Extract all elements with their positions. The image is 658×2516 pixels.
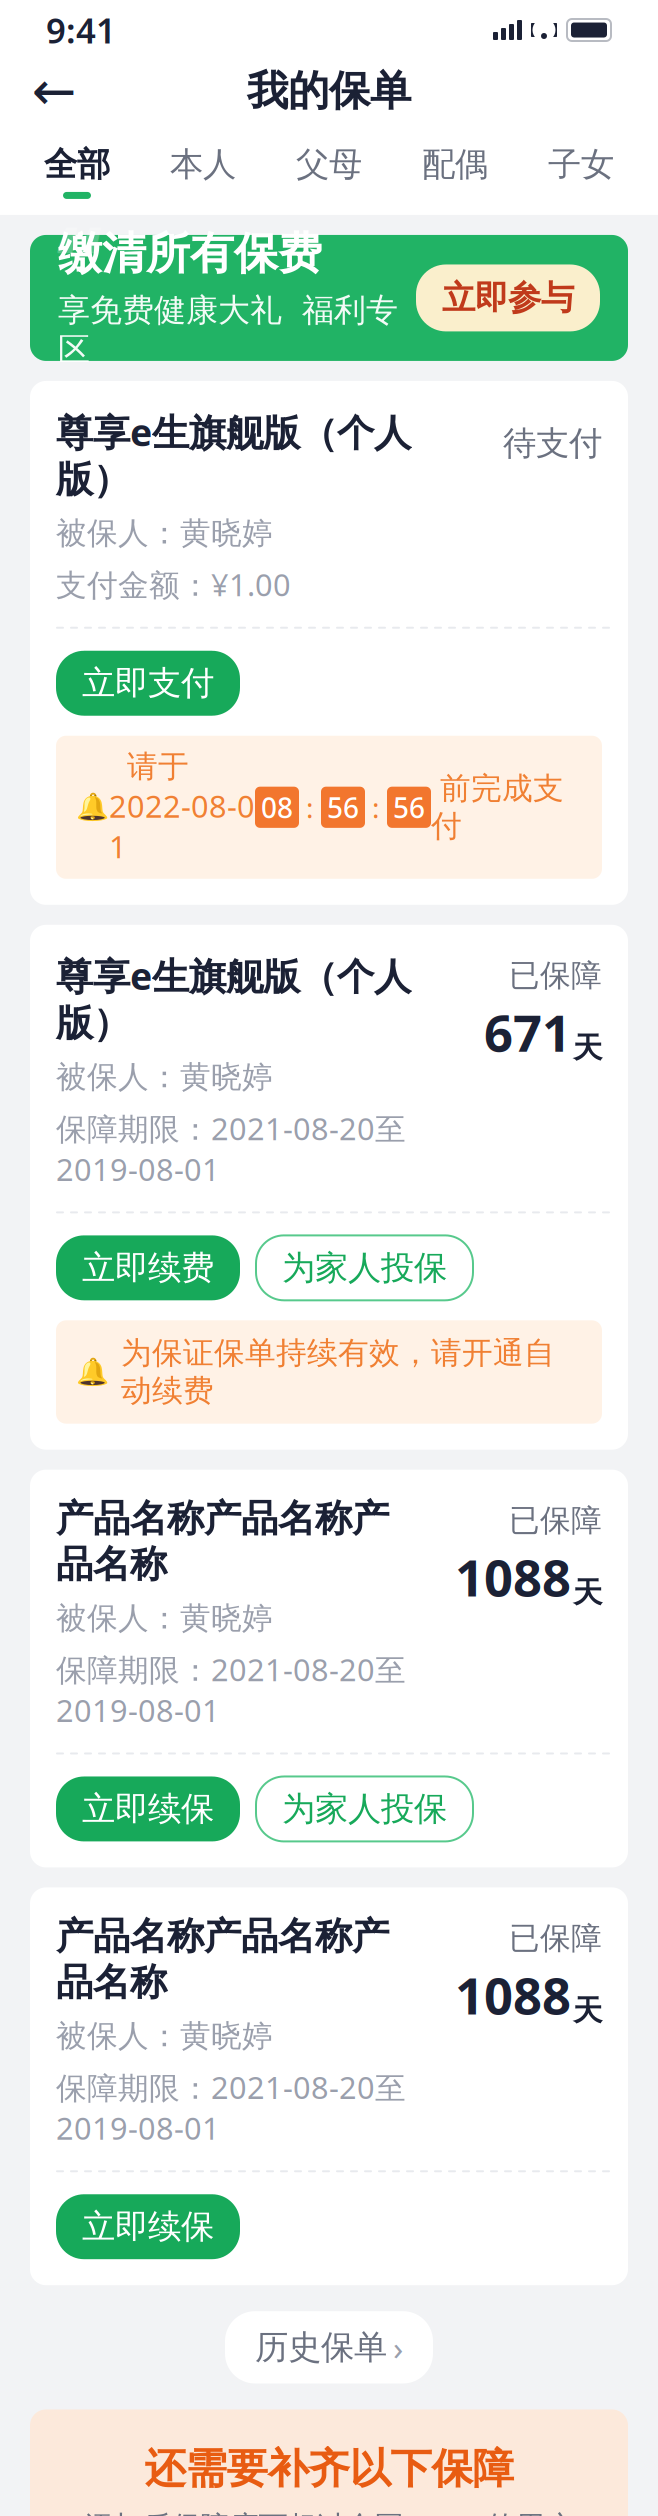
staticText: 请于2022-08-01 — [109, 748, 255, 867]
staticText: › — [393, 2325, 403, 2369]
staticText: ← — [31, 61, 76, 121]
staticText: 产品名称产品名称产品名称 — [56, 1496, 389, 1587]
staticText: 🔔 — [76, 1357, 109, 1387]
staticText: 立即续保 — [82, 2206, 214, 2247]
staticText: 1088 — [455, 1961, 571, 2028]
button[interactable]: 立即续费 — [56, 1235, 240, 1300]
button[interactable]: 立即续保 — [56, 2194, 240, 2259]
staticText: 还需要补齐以下保障 — [144, 2443, 513, 2494]
button[interactable]: 历史保单 — [225, 2311, 433, 2383]
staticText: 我的保单 — [247, 66, 411, 116]
button[interactable]: 产品名称产品名称产品名称 — [30, 1887, 628, 2285]
staticText: 08 — [261, 789, 293, 826]
staticText: 保障期限：2021-08-20至 2019-08-01 — [56, 1649, 406, 1730]
staticText: 天 — [573, 1575, 602, 1611]
staticText: 前完成支付 — [431, 770, 564, 845]
staticText: 父母 — [296, 144, 362, 185]
button[interactable]: 产品名称产品名称产品名称 — [30, 1470, 628, 1867]
button[interactable]: 配偶 — [392, 138, 518, 205]
staticText: 立即续保 — [82, 1788, 214, 1829]
staticText: 9:41 — [46, 7, 116, 53]
staticText: 已保障 — [509, 1502, 602, 1539]
staticText: 尊享e生旗舰版（个人版） — [56, 407, 411, 502]
staticText: 56 — [327, 789, 359, 826]
staticText: 全部 — [44, 144, 110, 185]
staticText: 待支付 — [503, 423, 602, 464]
staticText: 尊享e生旗舰版（个人版） — [56, 951, 411, 1046]
staticText: 本人 — [170, 144, 236, 185]
button[interactable]: 为家人投保 — [256, 1776, 473, 1841]
staticText: 支付金额：¥1.00 — [56, 564, 291, 605]
staticText: 天 — [573, 1992, 602, 2028]
button[interactable]: 父母 — [266, 138, 392, 205]
staticText: 已保障 — [509, 957, 602, 994]
staticText: 历史保单 — [255, 2327, 387, 2368]
button[interactable]: 本人 — [140, 138, 266, 205]
staticText: : — [299, 789, 321, 826]
button[interactable]: 子女 — [518, 138, 644, 205]
staticText: 立即参与 — [442, 277, 574, 318]
staticText: 享免费健康大礼 福利专区 — [58, 291, 398, 369]
staticText: 添加后保障度可超过全国99.9%的用户 — [84, 2506, 573, 2516]
staticText: 为家人投保 — [282, 1788, 447, 1829]
button[interactable]: 全部 — [14, 138, 140, 205]
button[interactable]: 立即支付 — [56, 651, 240, 716]
staticText: 被保人：黄晓婷 — [56, 1058, 273, 1096]
staticText: : — [365, 789, 387, 826]
staticText: “ — [56, 193, 102, 331]
staticText: 天 — [573, 1030, 602, 1066]
button[interactable]: “ — [30, 235, 628, 361]
staticText: 子女 — [548, 144, 614, 185]
staticText: 1088 — [455, 1543, 571, 1611]
staticText: 为保证保单持续有效，请开通自动续费 — [121, 1334, 555, 1410]
staticText: 被保人：黄晓婷 — [56, 1599, 273, 1637]
staticText: 为家人投保 — [282, 1247, 447, 1288]
staticText: 立即续费 — [82, 1247, 214, 1288]
staticText: 配偶 — [422, 144, 488, 185]
button[interactable]: 返回 — [24, 61, 84, 121]
staticText: 56 — [393, 789, 425, 826]
staticText: 已保障 — [509, 1919, 602, 1957]
staticText: 被保人：黄晓婷 — [56, 514, 273, 552]
button[interactable]: 为家人投保 — [256, 1235, 473, 1300]
staticText: 保障期限：2021-08-20至 2019-08-01 — [56, 1108, 406, 1189]
staticText: 产品名称产品名称产品名称 — [56, 1913, 389, 2005]
staticText: 缴清所有保费 — [58, 227, 322, 281]
button[interactable]: 尊享e生旗舰版（个人版） — [30, 381, 628, 905]
button[interactable]: 尊享e生旗舰版（个人版） — [30, 925, 628, 1450]
staticText: 立即支付 — [82, 663, 214, 704]
staticText: 被保人：黄晓婷 — [56, 2017, 273, 2055]
staticText: 🔔 — [76, 792, 109, 822]
button[interactable]: 立即续保 — [56, 1776, 240, 1841]
staticText: 671 — [484, 998, 571, 1066]
staticText: 保障期限：2021-08-20至 2019-08-01 — [56, 2067, 406, 2148]
